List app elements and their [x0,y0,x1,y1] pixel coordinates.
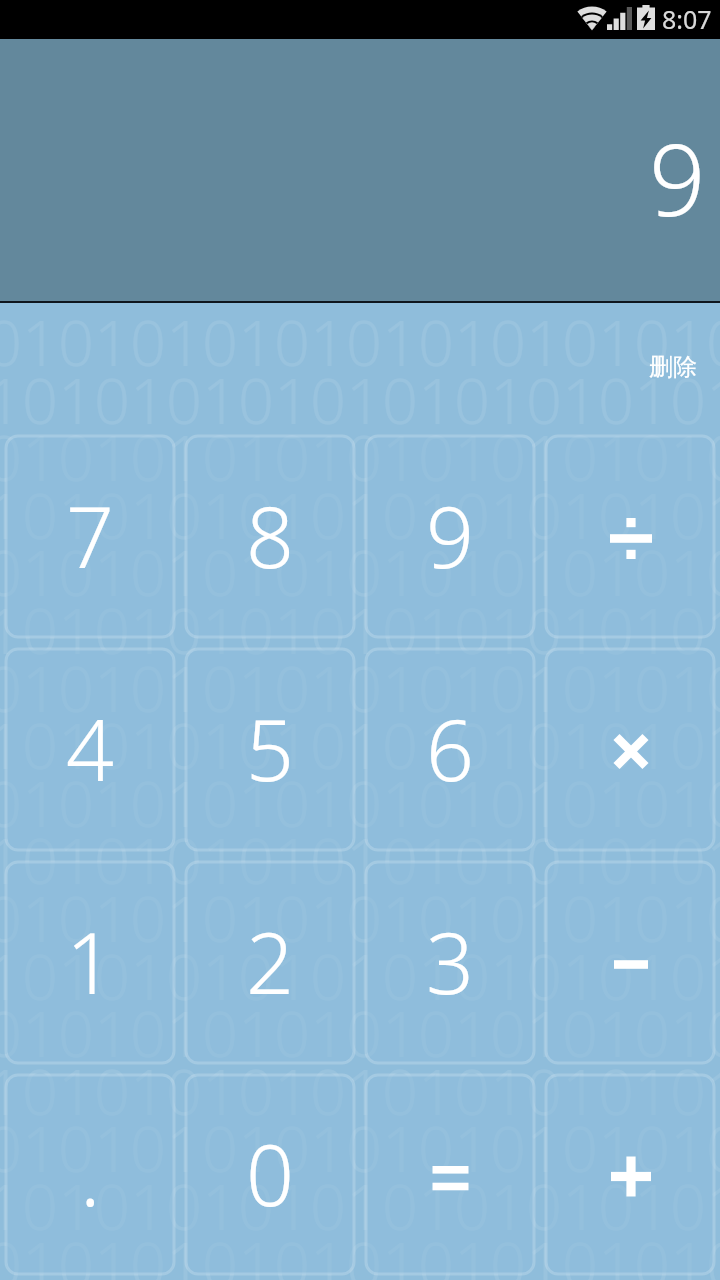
staticText: 2 [246,904,294,1018]
button[interactable]: 6 [360,643,540,856]
button[interactable] [540,856,720,1069]
button[interactable] [360,1069,540,1280]
button[interactable]: 5 [180,643,360,856]
staticText: 9 [426,478,474,592]
button[interactable]: 0 [180,1069,360,1280]
button[interactable]: 4 [0,643,180,856]
staticText: . [80,1116,101,1230]
staticText: 7 [66,478,114,592]
staticText: 8 [246,478,294,592]
button[interactable]: 8 [180,430,360,643]
button[interactable]: 7 [0,430,180,643]
button[interactable]: 1 [0,856,180,1069]
staticText: 6 [426,691,474,805]
button[interactable] [540,430,720,643]
button[interactable]: 3 [360,856,540,1069]
button[interactable]: . [0,1069,180,1280]
staticText: 8:07 [662,2,712,36]
staticText: 删除 [649,352,697,382]
button[interactable] [540,1069,720,1280]
button[interactable]: 9 [360,430,540,643]
button[interactable]: 2 [180,856,360,1069]
staticText: 3 [426,904,474,1018]
button[interactable] [540,643,720,856]
staticText: 0 [246,1116,294,1230]
staticText: 1 [66,904,114,1018]
button[interactable]: 删除 [626,340,720,394]
staticText: 9 [649,110,706,245]
staticText: 5 [246,691,294,805]
staticText: 4 [66,691,114,805]
